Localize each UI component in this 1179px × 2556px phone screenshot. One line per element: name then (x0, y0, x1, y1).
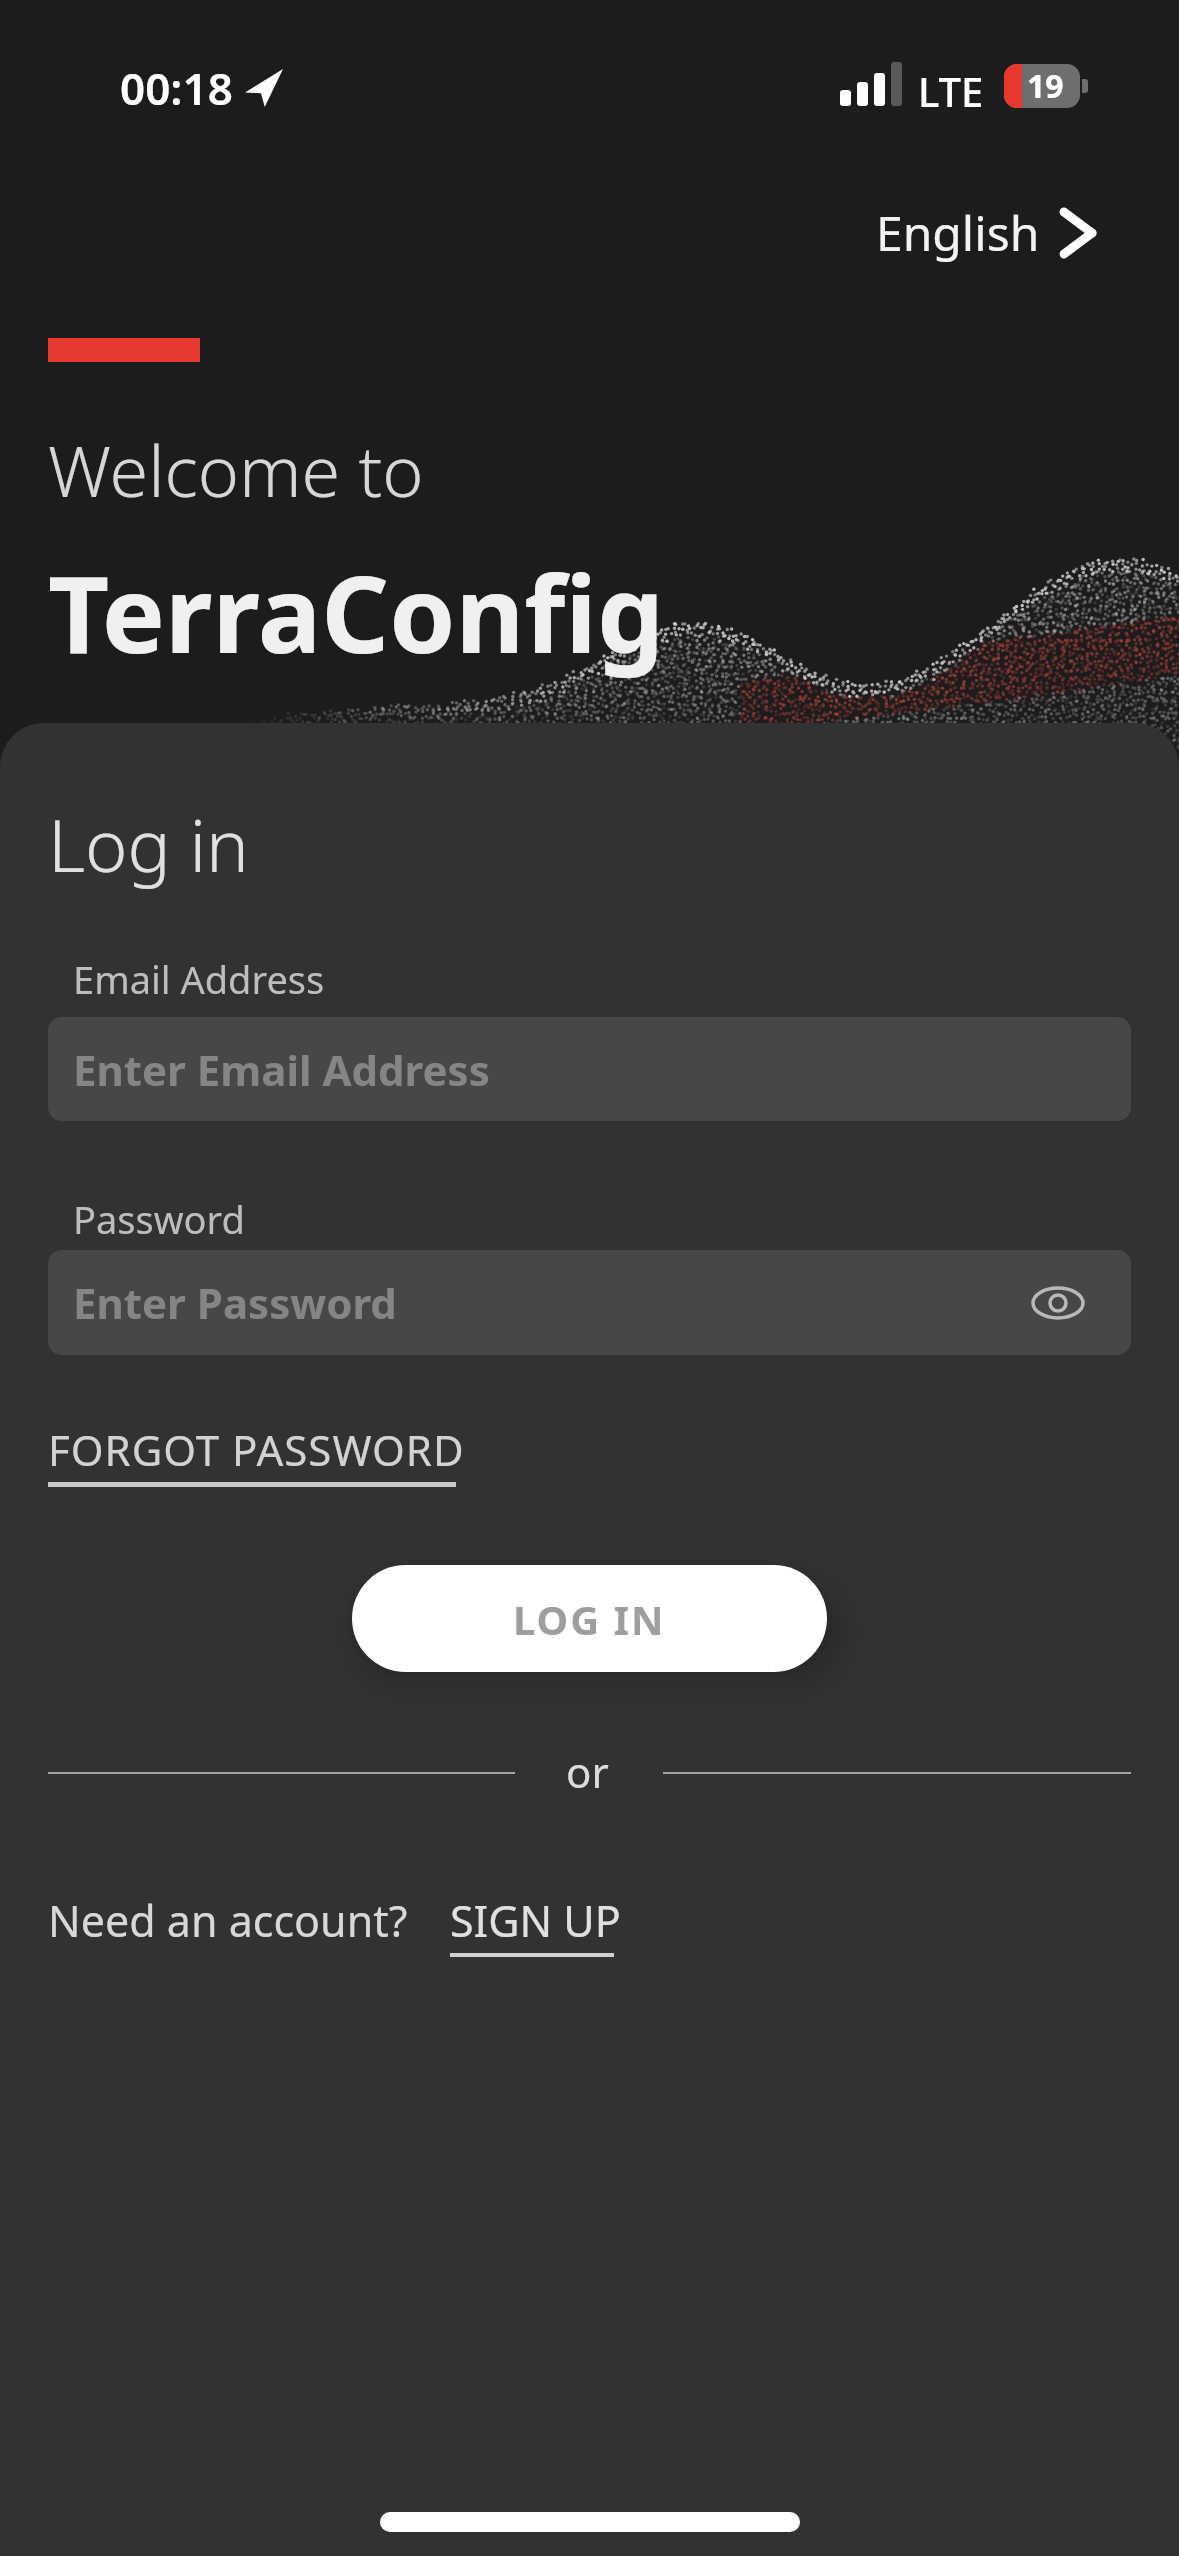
button[interactable]: Enter Email Address (48, 1017, 1131, 1121)
staticText: Email Address (73, 953, 325, 1005)
staticText: SIGN UP (450, 1891, 621, 1950)
staticText: FORGOT PASSWORD (48, 1421, 465, 1478)
button[interactable]: SIGN UP (450, 1891, 621, 1957)
staticText: Welcome to (48, 422, 424, 517)
staticText: Password (73, 1193, 245, 1245)
staticText: Need an account? (48, 1891, 408, 1950)
staticText: Enter Password (73, 1274, 397, 1331)
staticText: LTE (918, 64, 984, 118)
button[interactable]: LOG IN (352, 1565, 827, 1672)
staticText: or (566, 1743, 609, 1800)
staticText: TerraConfig (48, 540, 664, 684)
staticText: Enter Email Address (73, 1041, 490, 1098)
staticText: Log in (48, 795, 249, 893)
staticText: English (876, 200, 1040, 265)
button[interactable]: Enter Password (48, 1250, 1131, 1355)
staticText: 00:18 (120, 58, 233, 118)
staticText: 19 (1027, 64, 1064, 108)
button[interactable]: FORGOT PASSWORD (48, 1421, 465, 1487)
staticText: LOG IN (513, 1592, 666, 1646)
button[interactable]: English (860, 192, 1110, 273)
